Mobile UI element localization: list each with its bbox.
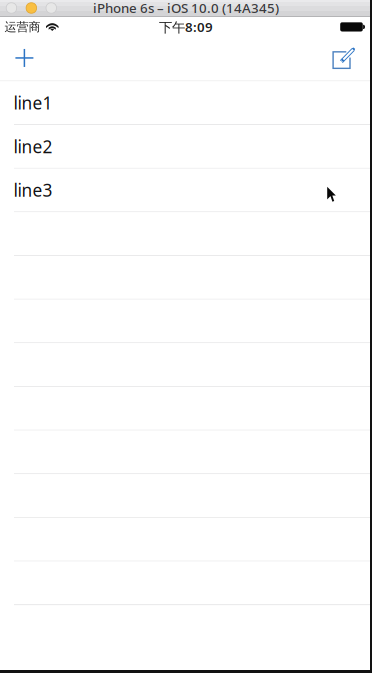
staticText: iPhone 6s – iOS 10.0 (14A345) (93, 0, 279, 17)
button[interactable]: line3 (0, 169, 372, 212)
staticText: 下午8:09 (159, 18, 213, 36)
staticText: line1 (13, 91, 52, 114)
button[interactable] (0, 387, 372, 430)
button[interactable] (0, 430, 372, 474)
staticText: 运营商 (4, 19, 40, 34)
button[interactable] (0, 256, 372, 299)
button[interactable]: line2 (0, 125, 372, 168)
button[interactable] (0, 561, 372, 605)
button[interactable] (0, 212, 372, 256)
button[interactable]: Add (10, 37, 39, 81)
button[interactable] (0, 300, 372, 343)
staticText: line3 (13, 179, 52, 202)
button[interactable]: Compose (328, 37, 357, 81)
button[interactable] (0, 518, 372, 561)
button[interactable] (0, 343, 372, 387)
button[interactable]: line1 (0, 81, 372, 125)
button[interactable] (0, 474, 372, 518)
staticText: line2 (13, 135, 52, 158)
